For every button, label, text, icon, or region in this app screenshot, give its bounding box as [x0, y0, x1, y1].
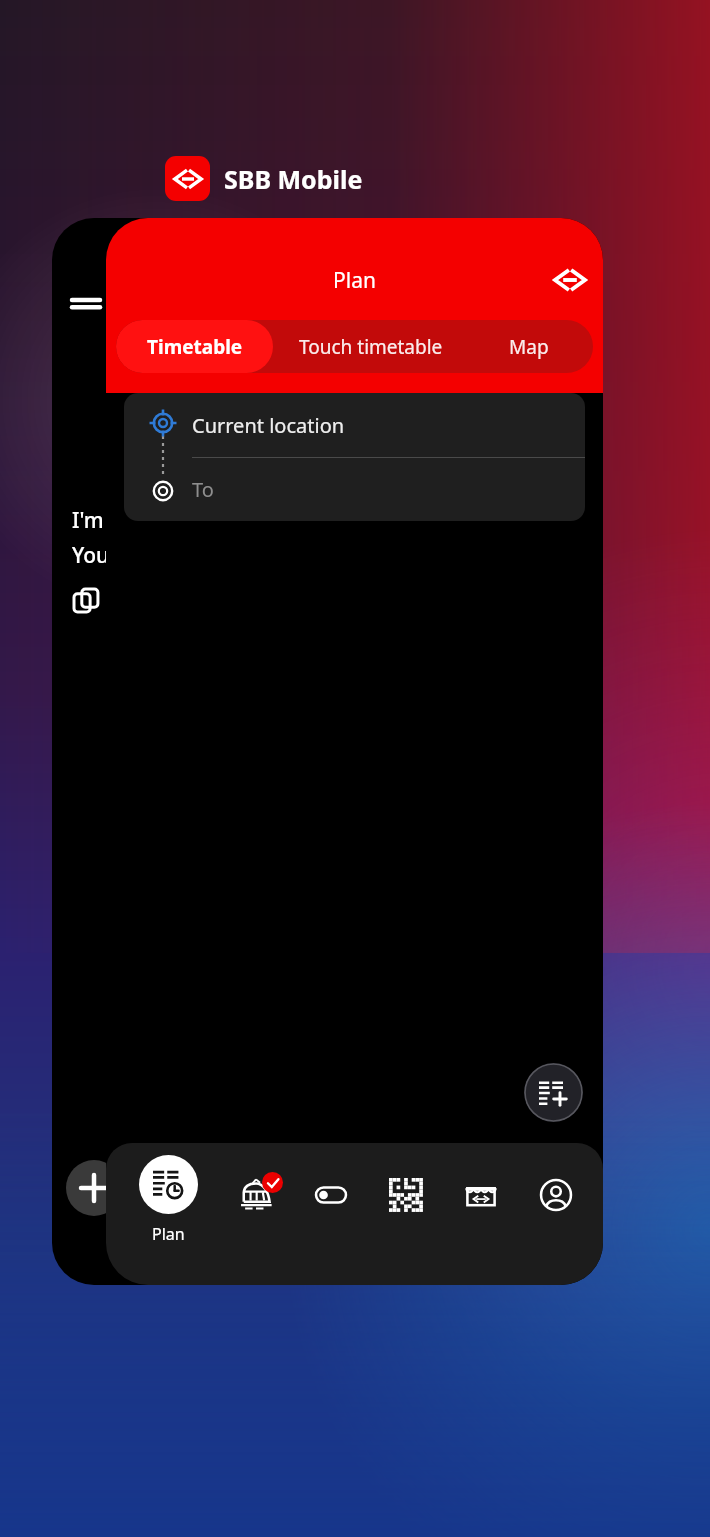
staticText: Current location — [192, 412, 345, 439]
staticText: SBB Mobile — [224, 162, 363, 196]
button[interactable]: To — [124, 457, 585, 521]
button[interactable]: Timetable — [116, 320, 273, 373]
button[interactable]: Map — [469, 320, 589, 373]
button[interactable]: Departures — [218, 1165, 293, 1225]
button[interactable]: SBB Mobile — [165, 156, 363, 201]
button[interactable]: Profile — [518, 1165, 593, 1225]
button[interactable]: I'm at — [52, 218, 552, 1285]
button[interactable]: New timetable entry — [524, 1063, 583, 1122]
staticText: Plan — [152, 1223, 185, 1245]
button[interactable]: Plan — [124, 1155, 212, 1245]
button[interactable]: Tickets — [368, 1165, 443, 1225]
staticText: Map — [509, 334, 549, 360]
button[interactable]: SBB — [547, 257, 593, 303]
staticText: Your — [72, 541, 119, 570]
staticText: I'm at — [72, 506, 130, 535]
button[interactable]: Current location — [124, 393, 585, 457]
staticText: Plan — [333, 266, 376, 295]
button[interactable]: Travelcards — [293, 1165, 368, 1225]
staticText: Timetable — [147, 334, 243, 360]
button[interactable]: Shop — [443, 1165, 518, 1225]
button[interactable]: Add — [66, 1160, 122, 1216]
button[interactable]: Touch timetable — [273, 320, 469, 373]
staticText: To — [192, 476, 214, 503]
staticText: Touch timetable — [299, 334, 443, 360]
